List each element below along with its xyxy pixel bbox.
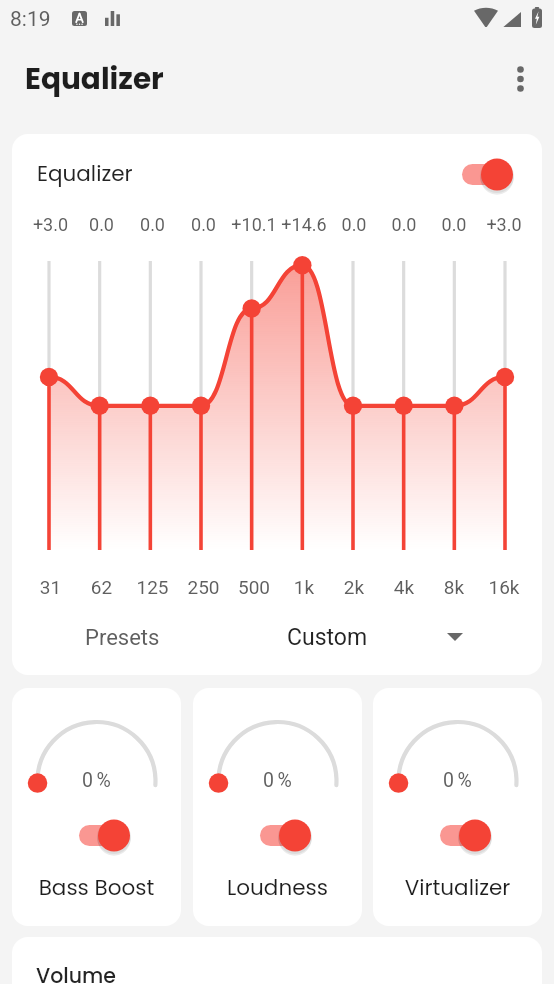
- staticText: 0%: [443, 769, 476, 792]
- staticText: +10.1: [229, 214, 279, 235]
- staticText: Equalizer: [25, 58, 164, 99]
- staticText: 62: [76, 576, 127, 598]
- staticText: 0.0: [127, 214, 178, 235]
- staticText: 0%: [82, 769, 115, 792]
- staticText: 0.0: [178, 214, 229, 235]
- staticText: 8:19: [10, 7, 51, 32]
- button[interactable]: Level 0 percent: [427, 764, 491, 796]
- staticText: Volume: [36, 961, 116, 984]
- button[interactable]: Level 0 percent: [373, 688, 542, 926]
- staticText: 250: [178, 576, 229, 598]
- staticText: +3.0: [25, 214, 76, 235]
- staticText: 1k: [279, 576, 329, 598]
- button[interactable]: More options: [498, 57, 542, 101]
- button[interactable]: Level 0 percent: [193, 688, 362, 926]
- staticText: 0.0: [76, 214, 127, 235]
- staticText: 8k: [429, 576, 479, 598]
- staticText: Loudness: [193, 872, 362, 902]
- staticText: 0.0: [429, 214, 479, 235]
- staticText: 4k: [379, 576, 429, 598]
- button[interactable]: Presets: [60, 617, 185, 659]
- staticText: 0%: [263, 769, 296, 792]
- staticText: Presets: [85, 625, 160, 651]
- staticText: 500: [229, 576, 279, 598]
- button[interactable]: Toggle Loudness: [260, 819, 311, 852]
- staticText: Virtualizer: [373, 872, 542, 902]
- staticText: 31: [25, 576, 76, 598]
- staticText: Custom: [287, 624, 368, 651]
- button[interactable]: Level 0 percent: [12, 688, 181, 926]
- button[interactable]: Toggle Bass Boost: [79, 819, 130, 852]
- button[interactable]: Toggle Virtualizer: [440, 819, 491, 852]
- button[interactable]: Level 0 percent: [247, 764, 311, 796]
- staticText: 0.0: [329, 214, 379, 235]
- staticText: 16k: [479, 576, 529, 598]
- button[interactable]: Custom: [266, 616, 486, 658]
- button[interactable]: Toggle equalizer: [451, 150, 523, 198]
- staticText: 0.0: [379, 214, 429, 235]
- staticText: 125: [127, 576, 178, 598]
- staticText: Bass Boost: [12, 872, 181, 902]
- staticText: 2k: [329, 576, 379, 598]
- staticText: +3.0: [479, 214, 529, 235]
- staticText: Equalizer: [37, 158, 133, 188]
- staticText: +14.6: [279, 214, 329, 235]
- button[interactable]: Level 0 percent: [66, 764, 130, 796]
